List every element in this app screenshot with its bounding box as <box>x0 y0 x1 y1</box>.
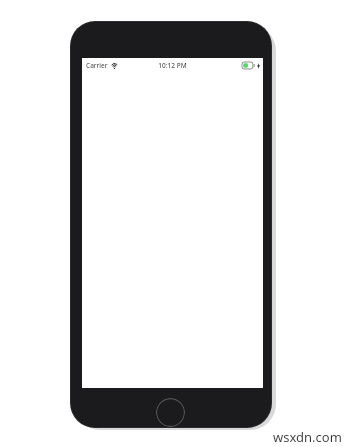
staticText: Carrier <box>86 61 108 70</box>
staticText: wsxdn.com <box>273 428 342 446</box>
button[interactable]: Home <box>156 398 185 427</box>
staticText: 10:12 PM <box>158 61 187 70</box>
